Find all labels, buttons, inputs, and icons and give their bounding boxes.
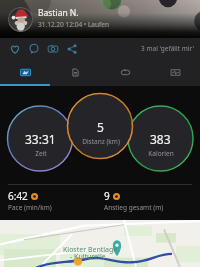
button[interactable]: 5 (68, 119, 133, 144)
staticText: 9 (104, 189, 110, 203)
button[interactable]: 33:31 (8, 131, 73, 156)
staticText: Pace (min/km) (8, 203, 52, 212)
staticText: Bastian N. (38, 7, 79, 19)
staticText: Zeit (35, 149, 47, 158)
staticText: 383 (150, 131, 171, 147)
button[interactable]: Teilen (62, 39, 81, 58)
staticText: 6:42 (8, 189, 28, 203)
staticText: Anstieg gesamt (m) (104, 203, 164, 212)
button[interactable]: Foto (43, 39, 62, 58)
staticText: - Kulturelle (70, 252, 106, 262)
button[interactable]: Karte (0, 220, 200, 267)
button[interactable]: Gefällt mir (5, 39, 24, 58)
button[interactable]: Herzfrequenz (150, 58, 200, 86)
button[interactable]: Kommentar (24, 39, 43, 58)
button[interactable]: Übersicht (0, 58, 50, 86)
button[interactable]: Runden (100, 58, 150, 86)
staticText: Kalorien (148, 149, 174, 158)
button[interactable]: 6:42 (8, 185, 104, 220)
button[interactable]: 383 (128, 131, 193, 156)
staticText: 33:31 (25, 131, 56, 147)
staticText: Kloster Bentlage (63, 245, 118, 255)
staticText: 3 mal 'gefällt mir' (141, 44, 194, 53)
button[interactable]: Details (50, 58, 100, 86)
button[interactable]: 9 (104, 185, 200, 220)
staticText: Distanz (km) (82, 137, 120, 146)
staticText: 31.12.20 12:04 • Laufen (38, 20, 109, 29)
button[interactable]: Profile (8, 7, 33, 32)
staticText: 5 (97, 119, 104, 135)
